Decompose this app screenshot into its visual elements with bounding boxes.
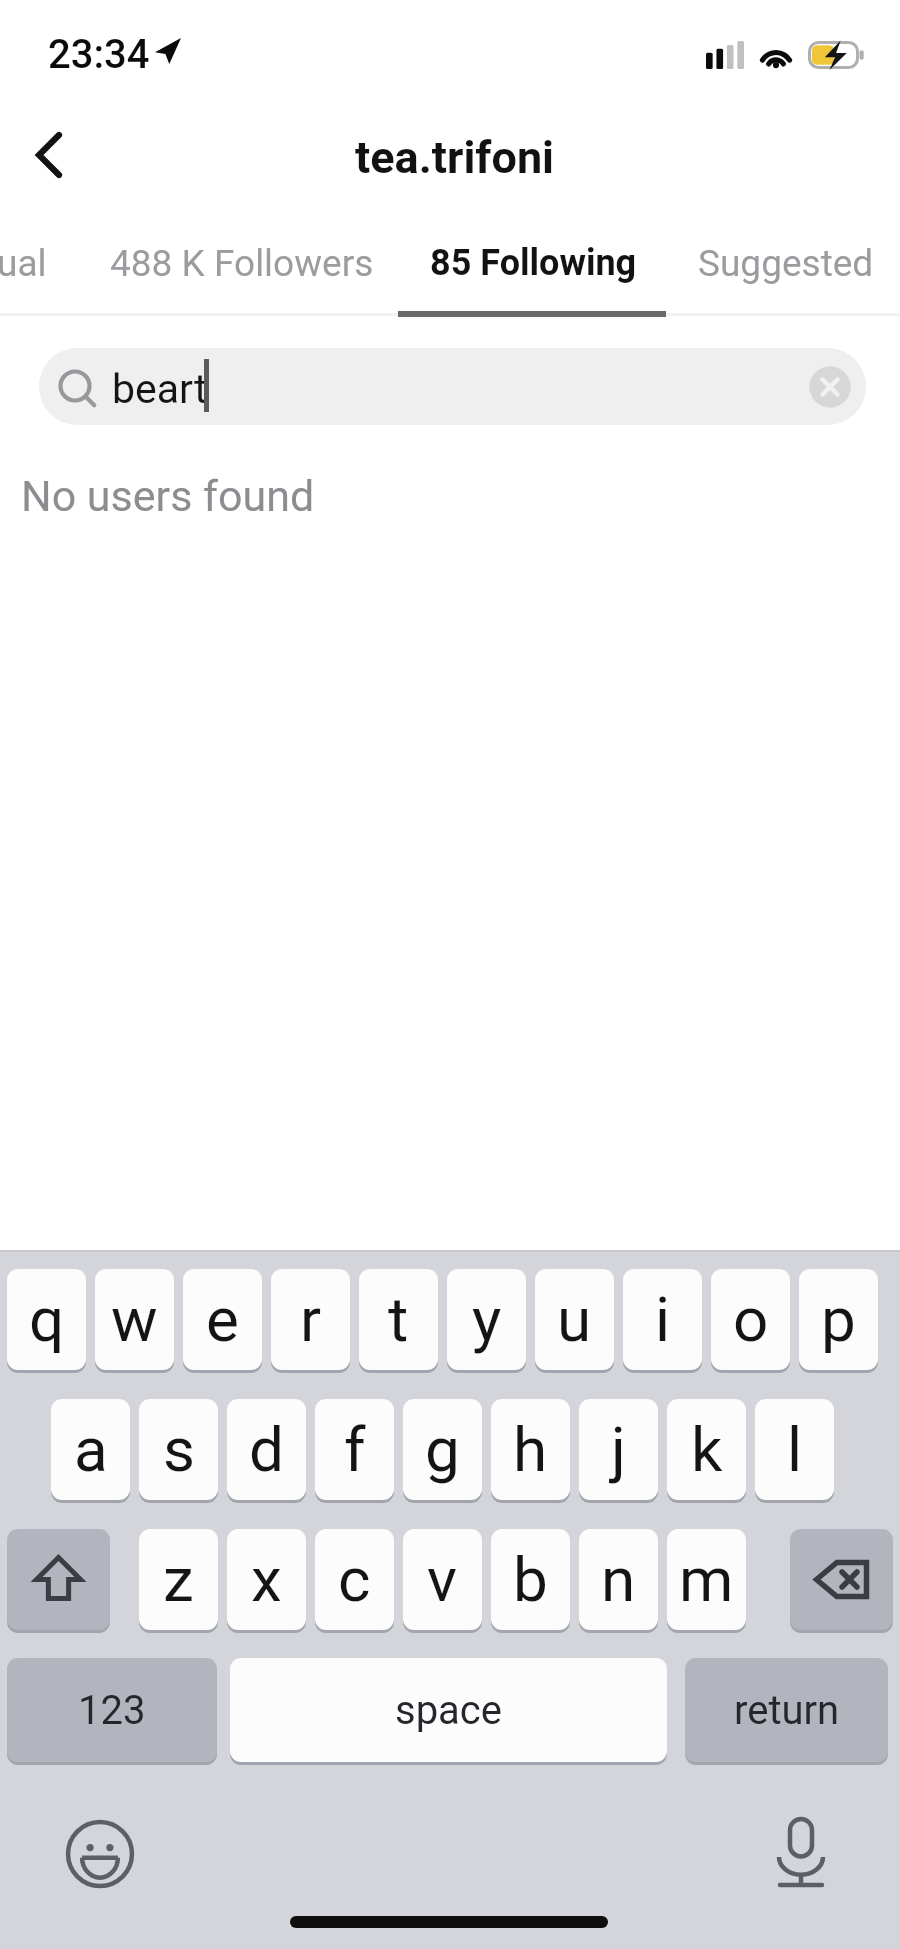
button[interactable]: Emoji keyboard: [61, 1815, 139, 1893]
staticText: b: [513, 1543, 548, 1616]
staticText: x: [251, 1543, 282, 1616]
button[interactable]: 488 K Followers: [110, 226, 374, 296]
button[interactable]: g: [403, 1399, 482, 1503]
button[interactable]: Backspace: [790, 1529, 893, 1633]
button[interactable]: Dictation: [762, 1814, 840, 1892]
button[interactable]: Shift: [7, 1529, 110, 1633]
staticText: f: [344, 1413, 366, 1486]
button[interactable]: j: [579, 1399, 658, 1503]
staticText: d: [249, 1413, 284, 1486]
button[interactable]: s: [139, 1399, 218, 1503]
button[interactable]: c: [315, 1529, 394, 1633]
button[interactable]: v: [403, 1529, 482, 1633]
staticText: u: [557, 1283, 592, 1356]
button[interactable]: m: [667, 1529, 746, 1633]
button[interactable]: i: [623, 1269, 702, 1373]
staticText: m: [679, 1543, 734, 1616]
staticText: h: [513, 1413, 548, 1486]
staticText: e: [206, 1283, 239, 1356]
staticText: a: [74, 1413, 108, 1486]
button[interactable]: w: [95, 1269, 174, 1373]
button[interactable]: 85 Following: [430, 226, 642, 296]
staticText: z: [163, 1543, 194, 1616]
button[interactable]: beart: [39, 348, 866, 425]
staticText: j: [611, 1413, 626, 1486]
button[interactable]: n: [579, 1529, 658, 1633]
button[interactable]: b: [491, 1529, 570, 1633]
staticText: 488 K Followers: [110, 242, 374, 285]
staticText: tea.trifoni: [355, 131, 555, 184]
button[interactable]: Back: [0, 106, 100, 206]
staticText: v: [427, 1543, 458, 1616]
button[interactable]: Suggested: [698, 226, 878, 296]
button[interactable]: 123: [7, 1658, 217, 1765]
staticText: n: [601, 1543, 636, 1616]
button[interactable]: space: [230, 1658, 667, 1765]
button[interactable]: q: [7, 1269, 86, 1373]
button[interactable]: h: [491, 1399, 570, 1503]
staticText: g: [425, 1413, 460, 1486]
button[interactable]: r: [271, 1269, 350, 1373]
button[interactable]: e: [183, 1269, 262, 1373]
staticText: o: [733, 1283, 769, 1356]
button[interactable]: o: [711, 1269, 790, 1373]
staticText: w: [111, 1283, 158, 1356]
button[interactable]: x: [227, 1529, 306, 1633]
button[interactable]: p: [799, 1269, 878, 1373]
staticText: q: [29, 1283, 65, 1356]
staticText: t: [388, 1283, 409, 1356]
button[interactable]: z: [139, 1529, 218, 1633]
button[interactable]: k: [667, 1399, 746, 1503]
staticText: r: [300, 1283, 322, 1356]
staticText: ual: [0, 242, 47, 285]
button[interactable]: y: [447, 1269, 526, 1373]
staticText: beart: [112, 365, 208, 413]
button[interactable]: u: [535, 1269, 614, 1373]
button[interactable]: d: [227, 1399, 306, 1503]
staticText: 85 Following: [430, 242, 637, 284]
button[interactable]: l: [755, 1399, 834, 1503]
button[interactable]: Clear search text: [808, 365, 852, 409]
staticText: p: [821, 1283, 856, 1356]
staticText: return: [734, 1687, 840, 1734]
button[interactable]: t: [359, 1269, 438, 1373]
staticText: s: [163, 1413, 195, 1486]
button[interactable]: f: [315, 1399, 394, 1503]
staticText: i: [655, 1283, 671, 1356]
staticText: c: [338, 1543, 371, 1616]
staticText: Suggested: [698, 242, 874, 285]
button[interactable]: a: [51, 1399, 130, 1503]
staticText: 23:34: [48, 31, 150, 78]
staticText: k: [691, 1413, 723, 1486]
staticText: No users found: [21, 471, 315, 521]
staticText: space: [395, 1687, 503, 1734]
button[interactable]: return: [685, 1658, 888, 1765]
staticText: l: [787, 1413, 803, 1486]
staticText: 123: [78, 1687, 146, 1734]
staticText: y: [472, 1283, 502, 1356]
